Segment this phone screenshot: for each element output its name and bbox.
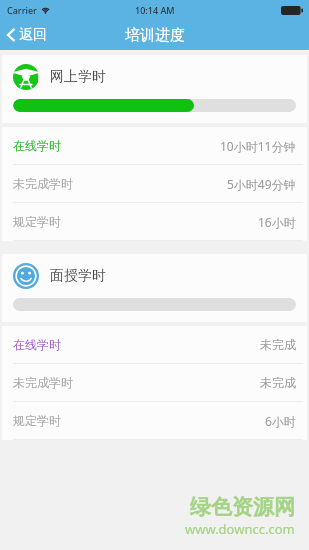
staticText: 在线学时 [13,138,61,153]
staticText: 16小时 [258,214,296,230]
button[interactable]: 返回 [0,23,57,47]
staticText: 6小时 [265,413,296,429]
staticText: 未完成 [260,337,296,352]
button[interactable]: 未完成学时 [2,165,307,202]
staticText: 培训进度 [125,26,185,45]
staticText: 返回 [19,26,47,44]
staticText: 规定学时 [13,214,61,229]
staticText: 5小时49分钟 [227,176,296,192]
staticText: 未完成 [260,375,296,390]
staticText: 绿色资源网 [190,494,295,520]
staticText: 在线学时 [13,337,61,352]
staticText: www.downcc.com [185,520,295,538]
staticText: 10:14 AM [135,4,175,16]
staticText: 未完成学时 [13,375,73,390]
staticText: Carrier [7,4,37,16]
button[interactable]: 在线学时 [2,127,307,164]
button[interactable]: 规定学时 [2,203,307,240]
staticText: 面授学时 [50,267,106,285]
staticText: 未完成学时 [13,176,73,191]
button[interactable]: 未完成学时 [2,364,307,401]
button[interactable]: 在线学时 [2,326,307,363]
staticText: 网上学时 [50,68,106,86]
staticText: 10小时11分钟 [220,138,296,154]
staticText: 规定学时 [13,413,61,428]
button[interactable]: 规定学时 [2,402,307,439]
